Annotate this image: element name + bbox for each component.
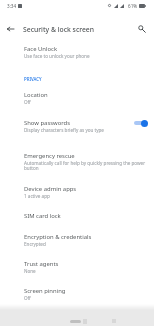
staticText: 1 active app bbox=[24, 193, 50, 199]
staticText: Security & lock screen bbox=[23, 25, 95, 34]
staticText: None bbox=[24, 268, 36, 274]
button[interactable]: Home bbox=[70, 320, 81, 323]
staticText: Device admin apps bbox=[24, 185, 77, 193]
staticText: Face Unlock bbox=[24, 45, 58, 53]
button[interactable]: Back bbox=[3, 22, 17, 36]
staticText: Encryption & credentials bbox=[24, 233, 92, 241]
staticText: Trust agents bbox=[24, 260, 59, 268]
staticText: Use face to unlock your phone bbox=[24, 53, 90, 59]
staticText: Encrypted bbox=[24, 241, 46, 247]
button[interactable]: Face Unlock bbox=[0, 45, 154, 59]
button[interactable]: Show passwords toggle bbox=[134, 119, 147, 127]
button[interactable]: Encryption & credentials bbox=[0, 233, 154, 247]
staticText: SIM card lock bbox=[24, 212, 61, 220]
staticText: 3:34 bbox=[7, 3, 17, 9]
button[interactable]: Device admin apps bbox=[0, 185, 154, 199]
staticText: Off bbox=[24, 295, 31, 301]
button[interactable]: Screen pinning bbox=[0, 287, 154, 301]
button[interactable]: Trust agents bbox=[0, 260, 154, 274]
button[interactable]: Search bbox=[135, 22, 149, 36]
staticText: Emergency rescue bbox=[24, 152, 75, 160]
staticText: Display characters briefly as you type bbox=[24, 127, 104, 133]
button[interactable]: Location bbox=[0, 91, 154, 105]
staticText: Location bbox=[24, 91, 48, 99]
button[interactable]: SIM card lock bbox=[0, 212, 154, 220]
staticText: Screen pinning bbox=[24, 287, 66, 295]
button[interactable]: Show passwords bbox=[0, 119, 154, 133]
staticText: 61% bbox=[128, 3, 138, 9]
staticText: Show passwords bbox=[24, 119, 71, 127]
button[interactable]: Emergency rescue bbox=[0, 152, 154, 171]
staticText: Automatically call for help by quickly p… bbox=[24, 160, 147, 171]
staticText: Off bbox=[24, 99, 31, 105]
staticText: PRIVACY bbox=[24, 76, 42, 82]
